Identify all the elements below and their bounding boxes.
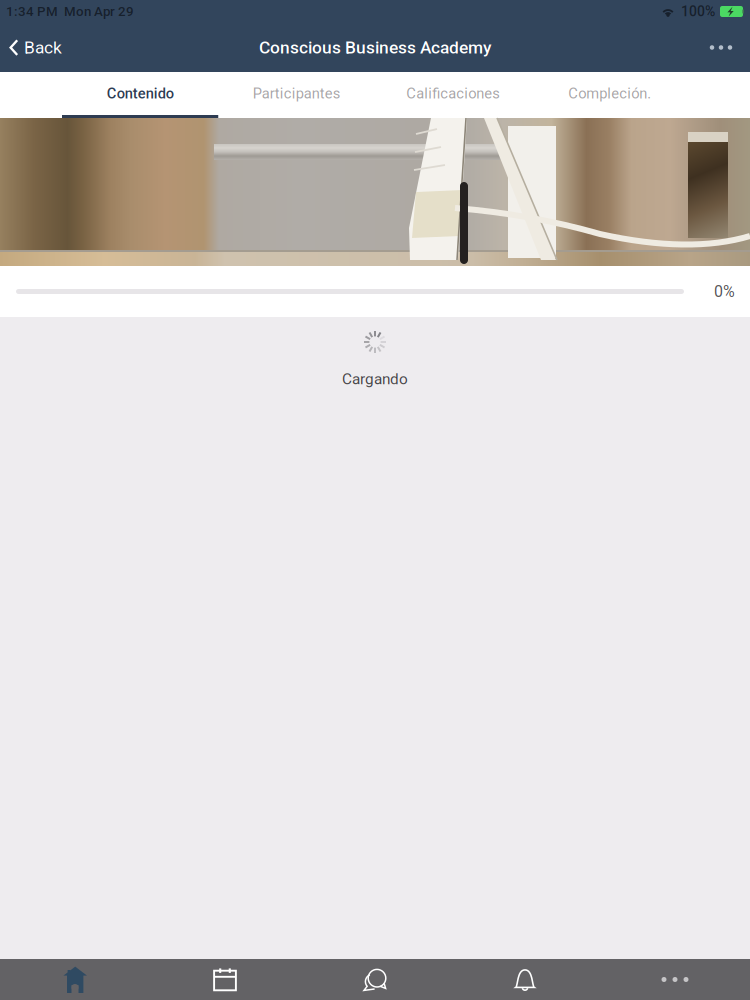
staticText: Back [24, 37, 62, 58]
button[interactable]: More options [692, 23, 750, 72]
button[interactable]: Calificaciones [375, 72, 531, 118]
button[interactable]: More [600, 959, 750, 1000]
button[interactable]: Notifications [450, 959, 600, 1000]
staticText: Conscious Business Academy [259, 37, 491, 58]
staticText: 1:34 PM [6, 4, 58, 19]
button[interactable]: Participantes [218, 72, 375, 118]
button[interactable]: Home [0, 959, 150, 1000]
staticText: Calificaciones [406, 85, 500, 102]
button[interactable]: Compleción. [531, 72, 688, 118]
button[interactable]: Calendar [150, 959, 300, 1000]
staticText: Participantes [253, 85, 341, 102]
staticText: Compleción. [568, 85, 651, 102]
button[interactable]: Back [0, 23, 74, 72]
staticText: 0% [714, 282, 735, 301]
staticText: Mon Apr 29 [64, 4, 134, 19]
staticText: Contenido [107, 85, 174, 102]
staticText: Cargando [342, 370, 408, 388]
button[interactable]: Contenido [62, 72, 218, 118]
button[interactable]: Messages [300, 959, 450, 1000]
staticText: 100% [681, 3, 715, 20]
